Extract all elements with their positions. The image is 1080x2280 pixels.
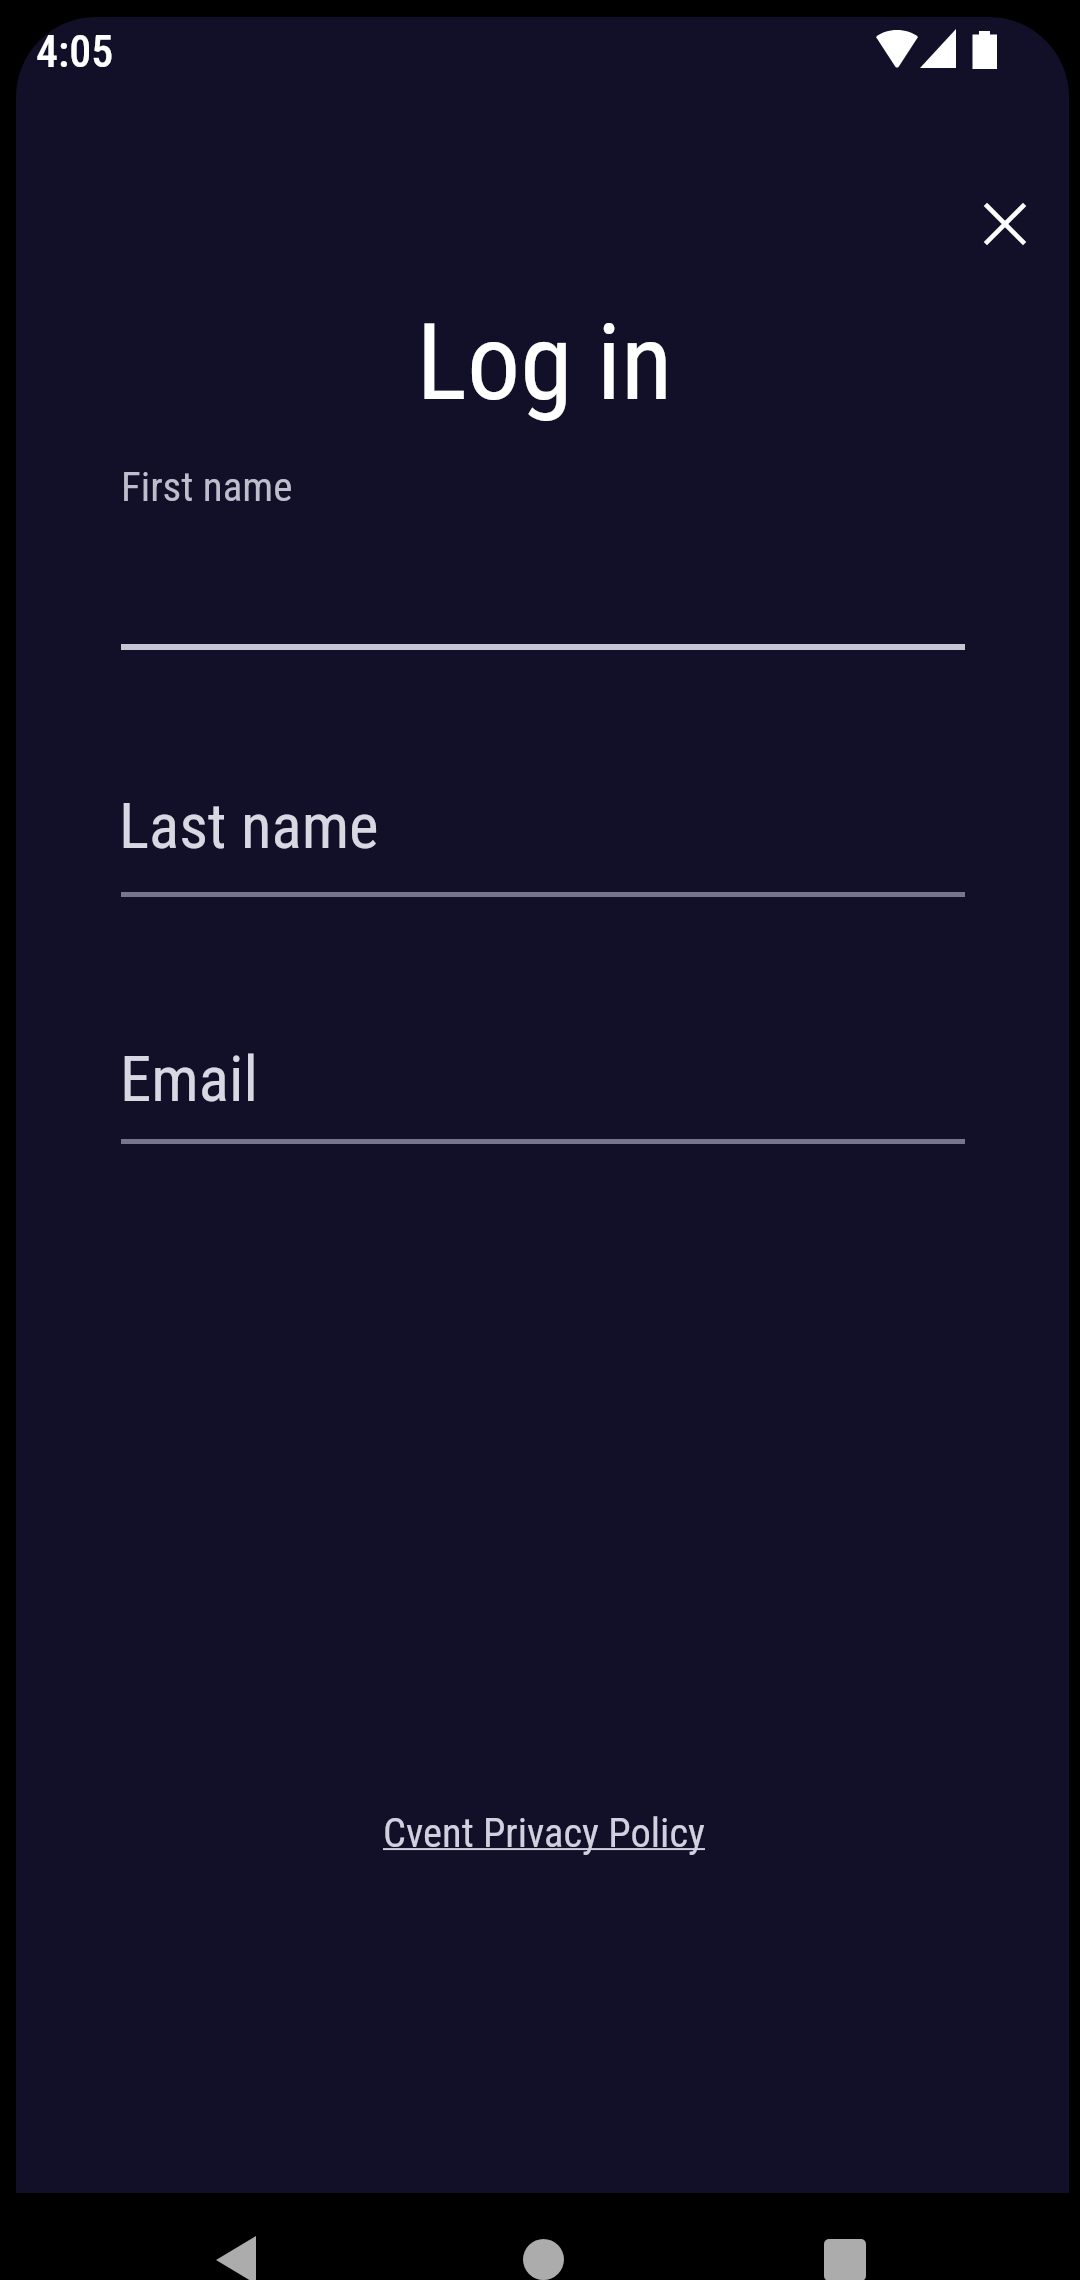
button[interactable]: Back [188, 2193, 284, 2280]
button[interactable]: Close [945, 164, 1065, 284]
button[interactable]: Home [495, 2193, 591, 2280]
button[interactable]: Last name [121, 762, 965, 897]
staticText: Cvent Privacy Policy [383, 1809, 705, 1856]
button[interactable]: Cvent Privacy Policy [373, 1803, 715, 1862]
staticText: Log in [18, 301, 1069, 425]
staticText: 4:05 [36, 26, 114, 78]
staticText: Email [120, 1043, 258, 1117]
button[interactable]: Recent apps [797, 2193, 893, 2280]
staticText: First name [121, 463, 293, 511]
staticText: Last name [119, 790, 379, 864]
button[interactable]: First name [121, 447, 965, 650]
button[interactable]: Email [121, 1009, 965, 1144]
